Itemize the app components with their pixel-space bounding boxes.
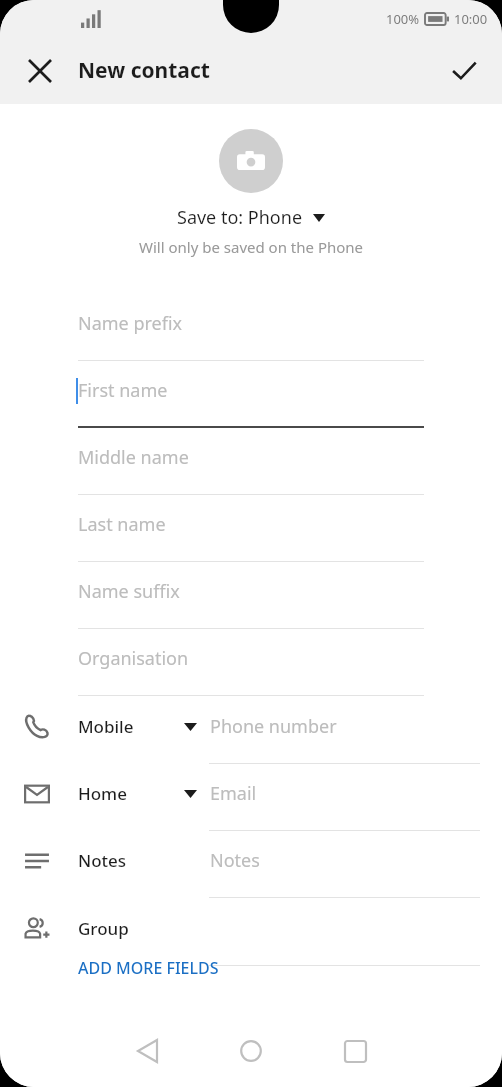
staticText: Email [210,781,257,806]
staticText: New contact [78,56,210,85]
button[interactable]: Mobile [0,697,502,764]
staticText: Notes [78,849,127,872]
staticText: 100% [386,10,420,28]
button[interactable]: Close [14,45,66,97]
staticText: Notes [210,848,260,873]
staticText: Phone number [210,714,337,739]
staticText: Group [78,917,129,940]
staticText: Mobile [78,715,134,738]
button[interactable]: Save to: Phone [177,205,325,230]
staticText: 10:00 [454,10,488,28]
button[interactable]: Save [438,45,490,97]
staticText: Last name [78,512,166,537]
staticText: Middle name [78,445,189,470]
staticText: Save to: Phone [177,205,303,230]
button[interactable]: First name [78,361,424,428]
button[interactable]: Notes [0,831,502,898]
staticText: Name suffix [78,579,180,604]
button[interactable]: Add photo [219,129,283,193]
button[interactable]: ADD MORE FIELDS [64,949,233,987]
staticText: ADD MORE FIELDS [78,957,219,979]
staticText: Will only be saved on the Phone [0,237,502,257]
button[interactable]: Name prefix [78,294,424,361]
staticText: Name prefix [78,311,183,336]
staticText: Organisation [78,646,189,671]
button[interactable]: Home [0,764,502,831]
button[interactable]: Middle name [78,428,424,495]
button[interactable]: Home [215,1015,287,1087]
staticText: First name [78,378,168,403]
button[interactable]: Group [0,899,502,966]
button[interactable]: Back [111,1015,183,1087]
button[interactable]: Organisation [78,629,424,696]
button[interactable]: Name suffix [78,562,424,629]
button[interactable]: Recents [319,1015,391,1087]
button[interactable]: Last name [78,495,424,562]
staticText: Home [78,782,127,805]
